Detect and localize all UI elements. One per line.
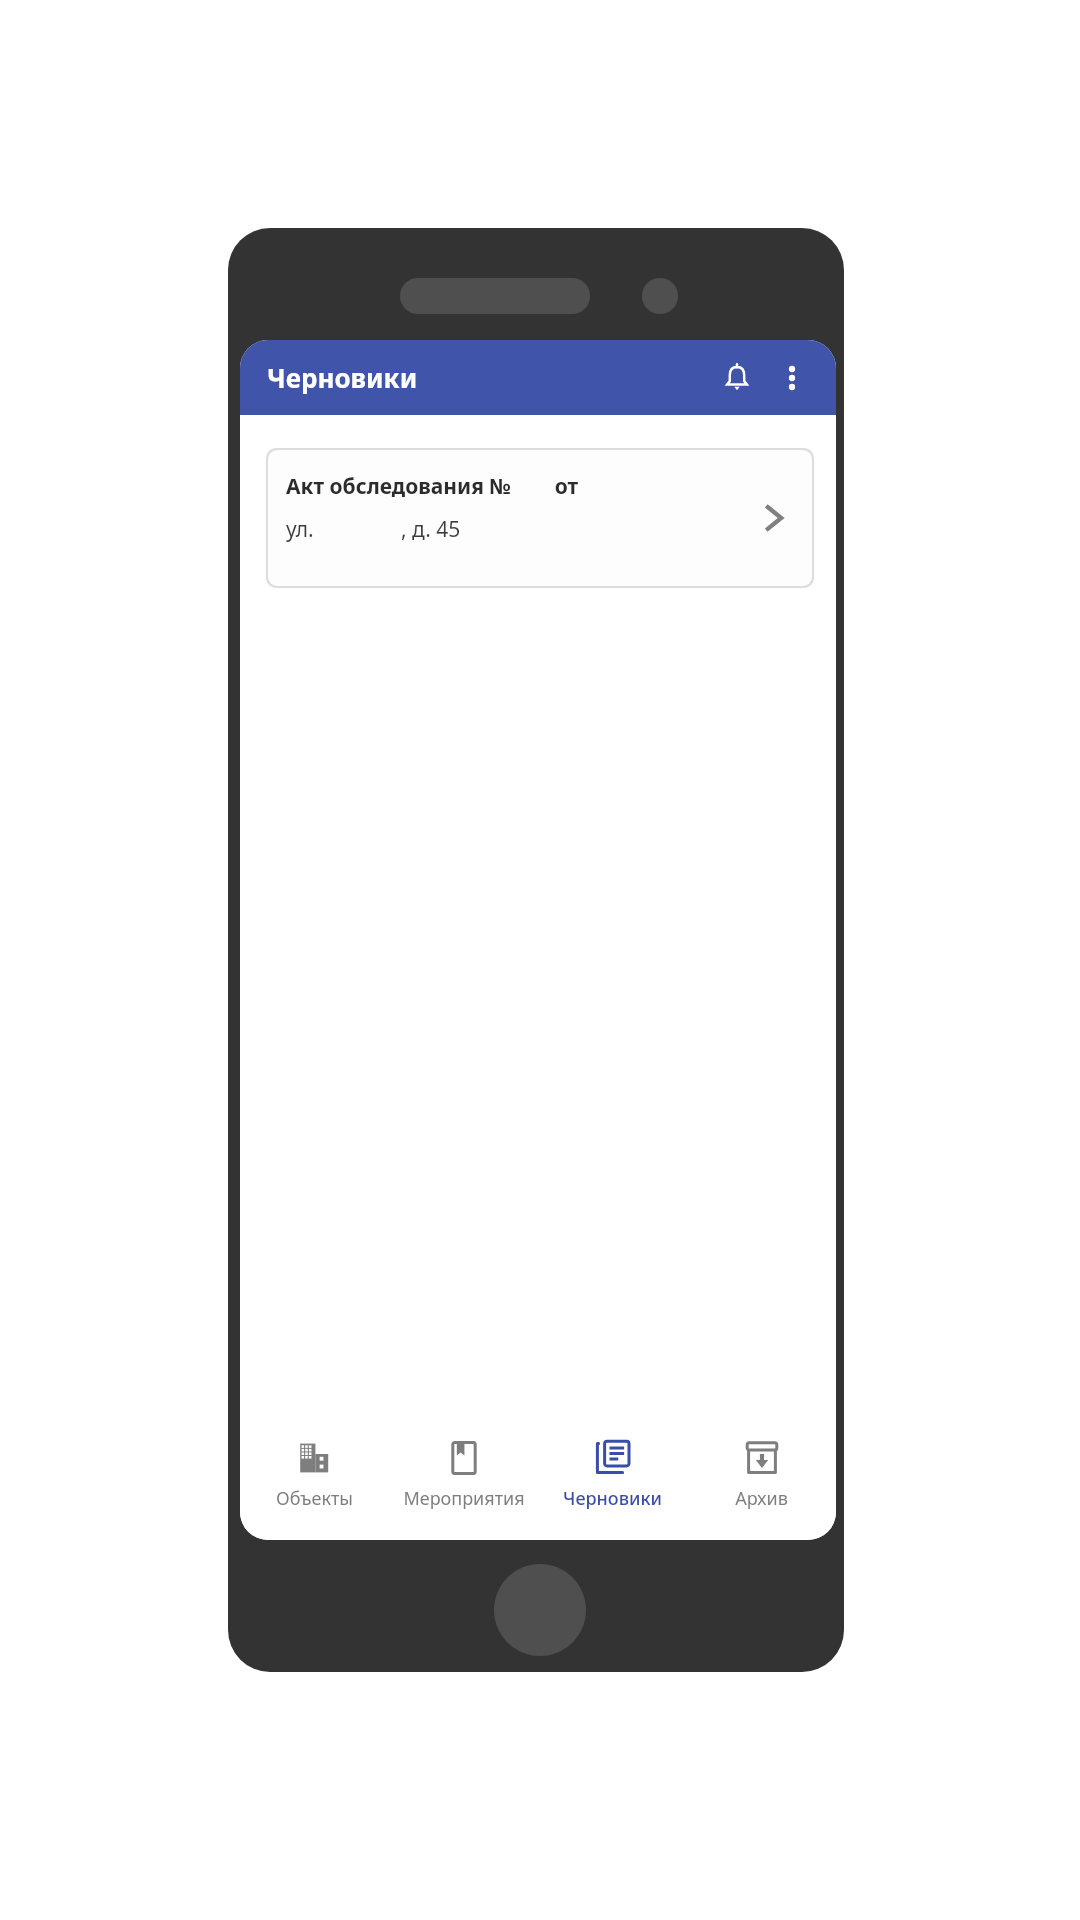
staticText: Акт обследования № от [286,472,579,501]
staticText: Объекты [276,1486,353,1511]
staticText: Черновики [563,1486,662,1511]
button[interactable]: Архив [687,1422,836,1540]
staticText: Мероприятия [403,1486,525,1511]
button[interactable]: Ещё [766,352,818,404]
button[interactable]: Объекты [240,1422,389,1540]
button[interactable]: Мероприятия [389,1422,538,1540]
staticText: Черновики [267,360,418,395]
button[interactable]: Акт обследования № от [268,450,812,586]
button[interactable]: Черновики [538,1422,687,1540]
staticText: Архив [735,1486,788,1511]
staticText: ул. , д. 45 [286,515,461,544]
button[interactable]: Уведомления [711,352,763,404]
